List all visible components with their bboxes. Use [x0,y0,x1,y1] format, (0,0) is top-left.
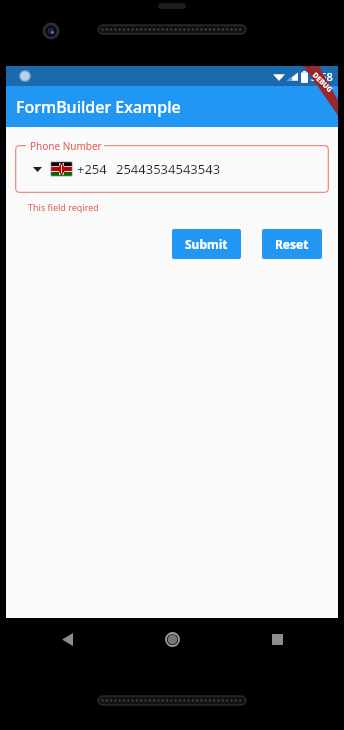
button[interactable]: Recent apps [260,622,294,656]
staticText: This field reqired [28,201,99,213]
button[interactable]: Back [50,622,84,656]
button[interactable]: Select country code [26,158,48,180]
staticText: 25443534543543 [116,160,221,178]
staticText: Reset [275,236,309,252]
staticText: Submit [185,236,228,252]
staticText: 3:58 [311,69,333,84]
staticText: Phone Number [30,139,102,153]
staticText: FormBuilder Example [16,96,181,118]
button[interactable]: Home [155,622,189,656]
button[interactable]: Submit [172,229,241,259]
button[interactable]: Reset [262,229,322,259]
staticText: DEBUG [310,71,335,95]
staticText: +254 [77,160,107,178]
